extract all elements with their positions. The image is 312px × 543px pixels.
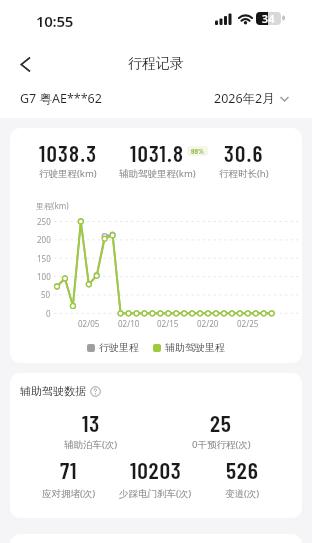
staticText: 少踩电门刹车(次) — [119, 487, 192, 500]
staticText: G7 粤AE***62 — [20, 90, 102, 107]
button[interactable]: 2026年2月 — [214, 90, 289, 107]
staticText: 0干预行程(次) — [192, 438, 251, 451]
staticText: 02/15 — [157, 318, 179, 329]
button[interactable] — [10, 49, 40, 79]
staticText: 应对拥堵(次) — [42, 487, 96, 500]
staticText: 30.6 — [224, 139, 264, 167]
staticText: 10:55 — [36, 11, 73, 31]
staticText: 71 — [60, 455, 78, 483]
button[interactable]: G7 粤AE***62 — [20, 90, 102, 107]
staticText: 13 — [82, 408, 101, 436]
staticText: 10203 — [130, 455, 182, 483]
staticText: 99% — [191, 146, 204, 156]
button[interactable]: 行驶里程 — [87, 341, 139, 354]
staticText: 辅助泊车(次) — [64, 438, 118, 451]
staticText: 100 — [37, 271, 51, 282]
staticText: 辅助驾驶里程(km) — [119, 167, 196, 180]
staticText: 里程(km) — [36, 200, 69, 211]
staticText: 200 — [37, 234, 51, 245]
staticText: 0 — [46, 308, 51, 319]
staticText: 02/05 — [78, 318, 100, 329]
staticText: 25 — [210, 408, 232, 436]
button[interactable]: 辅助驾驶数据 — [20, 384, 101, 398]
staticText: 行驶里程(km) — [39, 167, 97, 180]
staticText: 辅助驾驶数据 — [20, 384, 86, 398]
staticText: 02/10 — [118, 318, 140, 329]
staticText: 辅助驾驶里程 — [165, 341, 225, 354]
staticText: 02/20 — [197, 318, 219, 329]
staticText: 526 — [226, 455, 259, 483]
staticText: 行程时长(h) — [219, 167, 269, 180]
staticText: 行驶里程 — [99, 341, 139, 354]
staticText: 变道(次) — [225, 487, 260, 500]
staticText: 行程记录 — [128, 55, 184, 73]
staticText: 02/25 — [237, 318, 259, 329]
staticText: 34 — [262, 12, 276, 25]
staticText: 250 — [37, 216, 51, 227]
staticText: 50 — [41, 289, 51, 300]
staticText: 2026年2月 — [214, 90, 275, 107]
button[interactable]: 辅助驾驶里程 — [153, 341, 225, 354]
staticText: 1031.8 — [130, 139, 185, 167]
staticText: 150 — [37, 253, 51, 264]
staticText: 1038.3 — [39, 139, 98, 167]
